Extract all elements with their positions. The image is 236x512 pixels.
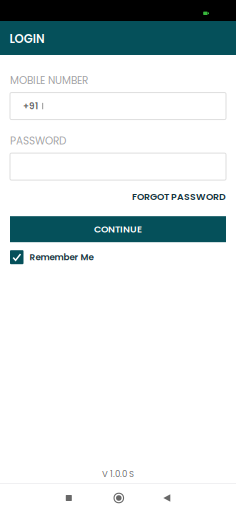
staticText: V 1.0.0 S xyxy=(102,468,134,480)
button[interactable]: Mobile number xyxy=(10,93,226,120)
button[interactable]: CONTINUE xyxy=(10,216,226,242)
button[interactable]: Back xyxy=(144,484,194,512)
staticText: MOBILE NUMBER xyxy=(10,73,88,88)
staticText: LOGIN xyxy=(9,31,45,47)
staticText: +91 xyxy=(23,100,38,112)
staticText: Remember Me xyxy=(29,251,93,263)
staticText: FORGOT PASSWORD xyxy=(132,190,226,203)
button[interactable]: Home xyxy=(94,484,144,512)
button[interactable]: Password xyxy=(10,153,226,180)
button[interactable]: Recent apps xyxy=(44,484,94,512)
button[interactable]: Remember Me xyxy=(10,250,226,264)
button[interactable]: FORGOT PASSWORD xyxy=(132,188,226,205)
staticText: CONTINUE xyxy=(94,223,142,236)
staticText: PASSWORD xyxy=(10,134,66,148)
